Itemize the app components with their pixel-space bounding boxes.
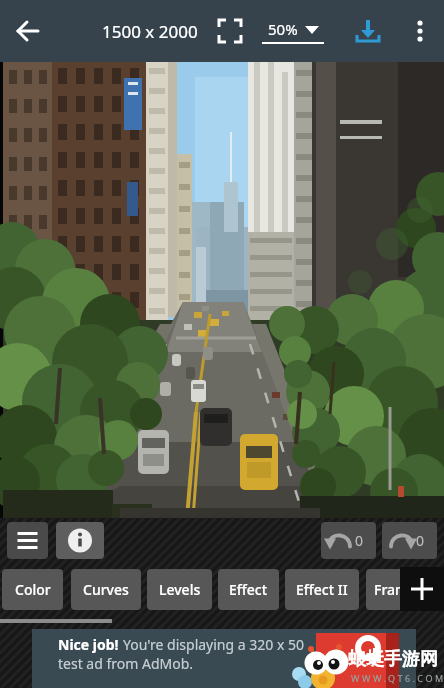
staticText: Effect II [296, 580, 348, 599]
button[interactable] [402, 13, 438, 49]
button[interactable]: Effect II [285, 569, 359, 610]
staticText: Curves [83, 580, 129, 599]
staticText: 蜋蜓手游网 [348, 648, 438, 671]
staticText: WWW.QT6.COM [351, 672, 444, 684]
button[interactable] [7, 522, 48, 559]
button[interactable] [212, 13, 248, 49]
button[interactable]: Frame [366, 569, 424, 610]
staticText: Effect [229, 580, 268, 599]
button[interactable] [56, 522, 104, 559]
button[interactable] [400, 567, 444, 611]
button[interactable] [8, 11, 48, 51]
button[interactable]: 50% [258, 12, 328, 50]
staticText: You're displaying a 320 x 50 [123, 635, 304, 654]
button[interactable]: Levels [147, 569, 212, 610]
button[interactable]: Color [2, 569, 63, 610]
button[interactable]: Curves [71, 569, 141, 610]
button[interactable]: 0 [321, 522, 376, 559]
button[interactable]: Nice job! [32, 629, 416, 688]
staticText: Nice job! [58, 635, 123, 654]
staticText: 1500 x 2000 [102, 20, 198, 43]
button[interactable]: 0 [382, 522, 437, 559]
button[interactable] [350, 13, 386, 49]
staticText: Frame [374, 580, 417, 599]
staticText: test ad from AdMob. [58, 654, 194, 673]
staticText: 50% [268, 19, 298, 39]
staticText: Color [15, 580, 51, 599]
staticText: 0 [416, 531, 425, 550]
staticText: 0 [355, 531, 364, 550]
staticText: Levels [159, 580, 201, 599]
button[interactable]: Effect [218, 569, 279, 610]
